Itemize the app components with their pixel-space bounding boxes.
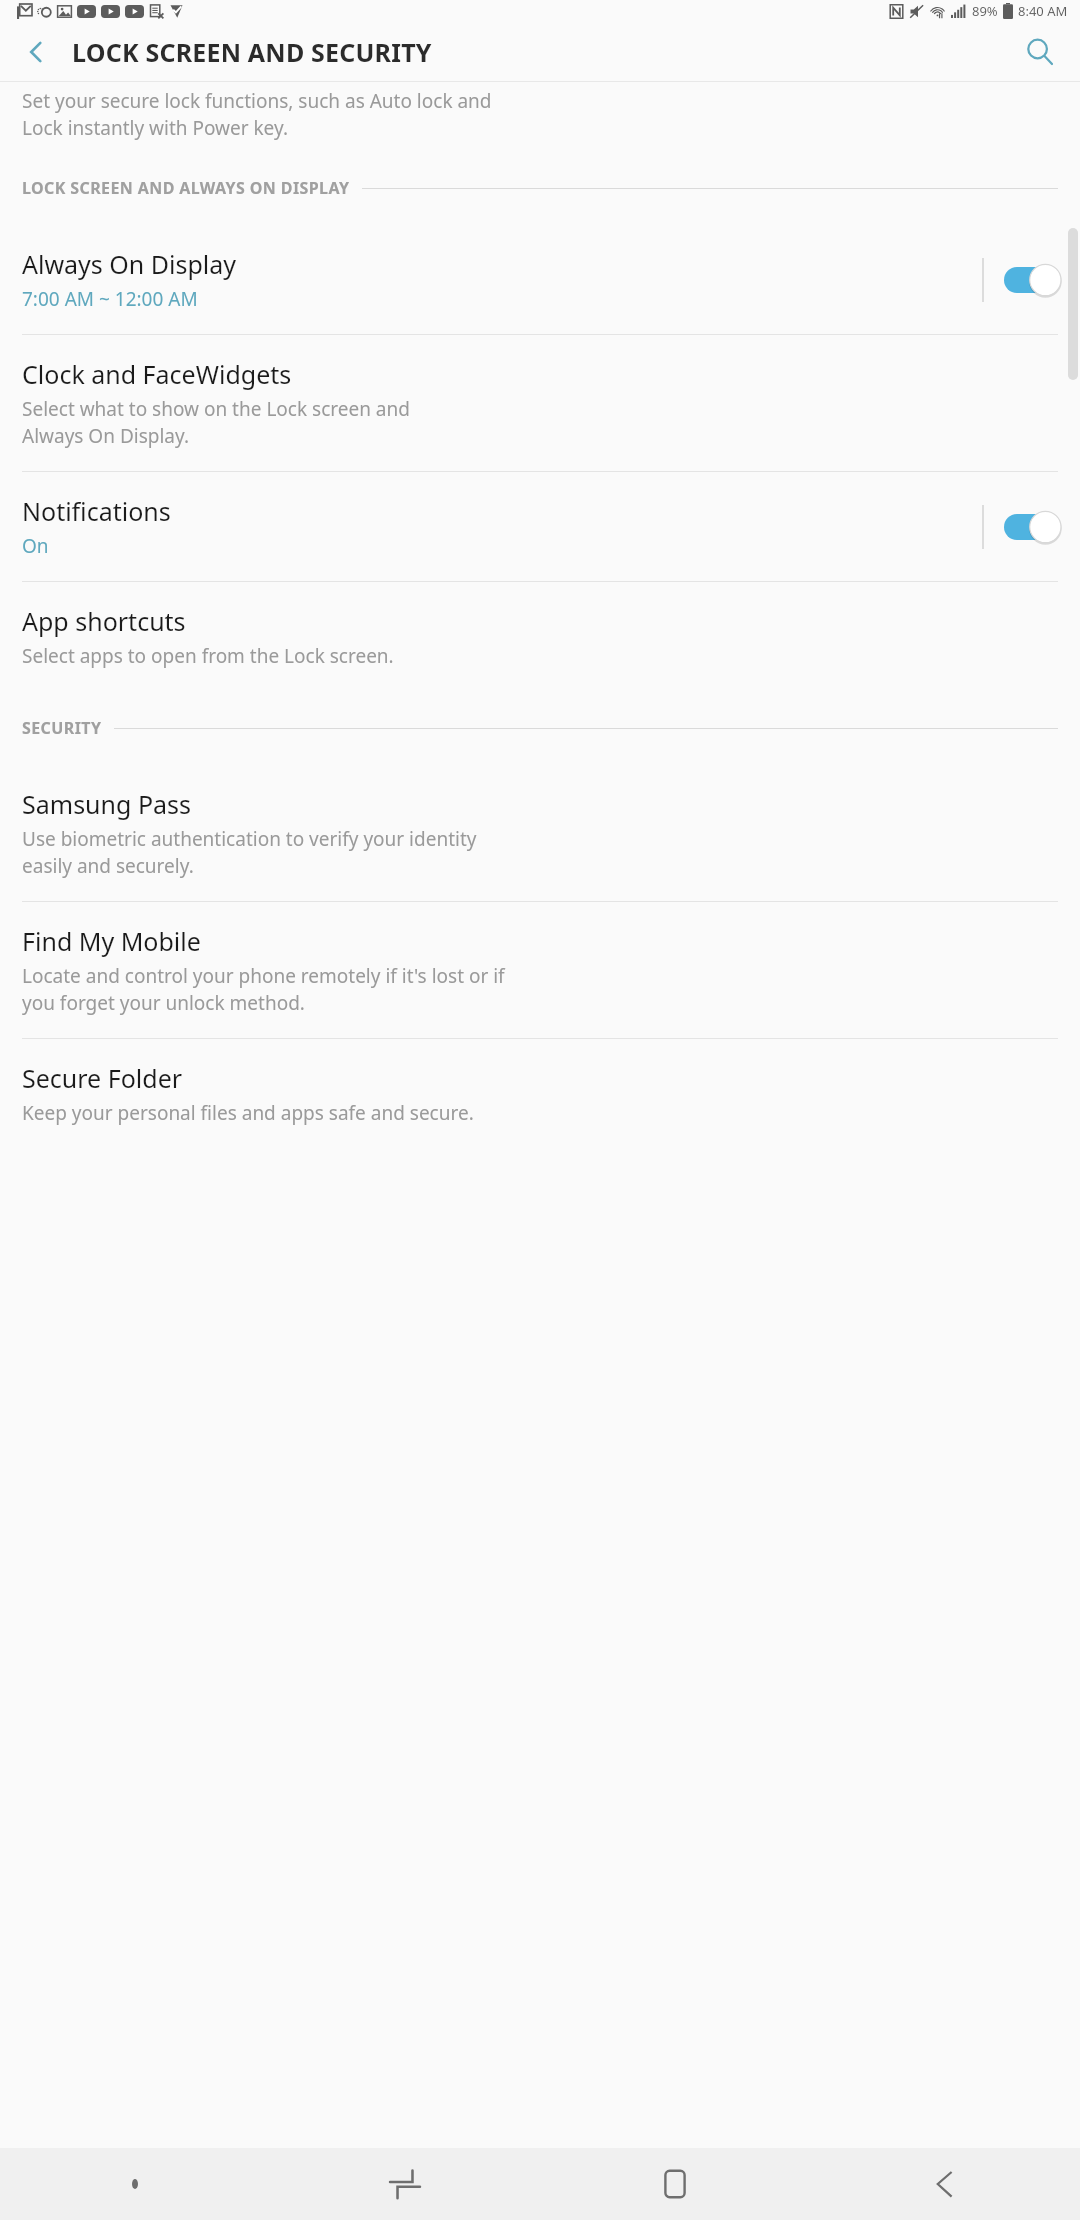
- staticText: Find My Mobile: [22, 924, 201, 958]
- staticText: Select apps to open from the Lock screen…: [22, 643, 394, 669]
- button[interactable]: Back: [10, 26, 62, 78]
- button[interactable]: Search: [1014, 26, 1066, 78]
- staticText: Samsung Pass: [22, 787, 191, 821]
- button[interactable]: Home: [540, 2148, 810, 2220]
- staticText: 89%: [972, 2, 998, 20]
- staticText: 7:00 AM ~ 12:00 AM: [22, 286, 198, 312]
- staticText: LOCK SCREEN AND SECURITY: [72, 35, 432, 69]
- staticText: Notifications: [22, 494, 171, 528]
- staticText: LOCK SCREEN AND ALWAYS ON DISPLAY: [22, 177, 350, 199]
- button[interactable]: Back: [810, 2148, 1080, 2220]
- button[interactable]: Samsung Pass: [0, 765, 1080, 901]
- button[interactable]: Toggle: [1004, 263, 1062, 297]
- staticText: Secure Folder: [22, 1061, 183, 1095]
- button[interactable]: Always On Display: [0, 225, 1080, 334]
- button[interactable]: Menu indicator: [0, 2148, 270, 2220]
- button[interactable]: Toggle: [1004, 510, 1062, 544]
- staticText: Locate and control your phone remotely i…: [22, 963, 505, 1016]
- staticText: App shortcuts: [22, 604, 186, 638]
- staticText: Clock and FaceWidgets: [22, 357, 292, 391]
- staticText: Keep your personal files and apps safe a…: [22, 1100, 474, 1126]
- staticText: Set your secure lock functions, such as …: [22, 88, 492, 141]
- button[interactable]: Notifications: [0, 472, 1080, 581]
- button[interactable]: Clock and FaceWidgets: [0, 335, 1080, 471]
- staticText: SECURITY: [22, 717, 102, 739]
- button[interactable]: Find My Mobile: [0, 902, 1080, 1038]
- staticText: Use biometric authentication to verify y…: [22, 826, 477, 879]
- staticText: Select what to show on the Lock screen a…: [22, 396, 410, 449]
- staticText: Always On Display: [22, 247, 237, 281]
- button[interactable]: App shortcuts: [0, 582, 1080, 691]
- staticText: 8:40 AM: [1018, 2, 1068, 20]
- button[interactable]: Secure Folder: [0, 1039, 1080, 1148]
- button[interactable]: Recent apps: [270, 2148, 540, 2220]
- staticText: On: [22, 533, 49, 559]
